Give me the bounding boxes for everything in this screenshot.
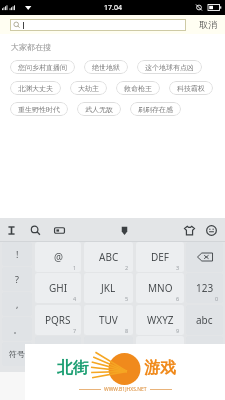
- staticText: JKL: [101, 281, 116, 295]
- button[interactable]: Handwriting: [117, 223, 132, 238]
- staticText: 123: [196, 281, 214, 295]
- button[interactable]: 123: [186, 273, 223, 303]
- staticText: PQRS: [45, 313, 71, 327]
- staticText: 17.04: [104, 3, 122, 13]
- button[interactable]: globe: [35, 336, 81, 366]
- staticText: 。: [13, 324, 22, 335]
- staticText: 7: [73, 327, 77, 334]
- button[interactable]: MNO: [136, 273, 184, 303]
- staticText: 符号: [9, 349, 25, 359]
- staticText: DEF: [151, 250, 170, 264]
- button[interactable]: 大劫主: [70, 81, 107, 95]
- staticText: abc: [196, 313, 213, 327]
- button[interactable]: JKL: [84, 273, 133, 303]
- button[interactable]: enter: [186, 336, 223, 366]
- button[interactable]: @: [35, 242, 81, 272]
- staticText: 9: [176, 327, 180, 334]
- button[interactable]: ,: [2, 292, 32, 316]
- staticText: WXYZ: [147, 313, 174, 327]
- staticText: 6: [176, 295, 180, 302]
- staticText: ABC: [99, 250, 119, 264]
- staticText: 5: [125, 295, 129, 302]
- button[interactable]: space: [84, 336, 133, 366]
- button[interactable]: 您问乡村直播间: [10, 60, 75, 74]
- staticText: 游戏: [144, 358, 176, 378]
- staticText: TUV: [99, 313, 118, 327]
- button[interactable]: 刷刷存在感: [130, 102, 181, 116]
- staticText: 刷刷存在感: [138, 105, 173, 114]
- button[interactable]: Search: [28, 223, 43, 238]
- button[interactable]: TUV: [84, 305, 133, 335]
- staticText: ?: [15, 273, 19, 285]
- button[interactable]: 救命枪王: [116, 81, 160, 95]
- staticText: 3: [176, 264, 180, 271]
- staticText: 武人无敌: [85, 105, 113, 114]
- staticText: 4: [73, 295, 77, 302]
- button[interactable]: ，: [136, 336, 184, 366]
- staticText: 取消: [199, 19, 217, 30]
- staticText: 这个地球有点凶: [145, 63, 194, 72]
- button[interactable]: 北渊大丈夫: [10, 81, 61, 95]
- button[interactable]: Clipboard: [52, 223, 67, 238]
- button[interactable]: abc: [186, 305, 223, 335]
- button[interactable]: 。: [2, 317, 32, 341]
- staticText: 1: [73, 264, 77, 271]
- button[interactable]: Emoji: [204, 223, 219, 238]
- staticText: GHI: [49, 281, 68, 295]
- staticText: 重生野性时代: [18, 105, 60, 114]
- button[interactable]: Input settings: [4, 223, 19, 238]
- button[interactable]: Theme: [182, 223, 197, 238]
- button[interactable]: GHI: [35, 273, 81, 303]
- button[interactable]: WXYZ: [136, 305, 184, 335]
- button[interactable]: 符号: [2, 342, 32, 366]
- staticText: 北渊大丈夫: [18, 84, 53, 93]
- staticText: ,: [16, 298, 19, 310]
- staticText: 大家都在搜: [11, 42, 51, 52]
- staticText: !: [16, 248, 19, 260]
- button[interactable]: 取消: [197, 15, 219, 34]
- button[interactable]: ?: [2, 267, 32, 291]
- button[interactable]: 这个地球有点凶: [137, 60, 202, 74]
- staticText: 科技霸权: [177, 84, 205, 93]
- button[interactable]: !: [2, 242, 32, 266]
- staticText: 救命枪王: [124, 84, 152, 93]
- staticText: 大劫主: [78, 84, 99, 93]
- staticText: 2: [125, 264, 129, 271]
- button[interactable]: [10, 19, 186, 31]
- staticText: WWW.B1JHXS.NET: [104, 386, 147, 393]
- button[interactable]: 重生野性时代: [10, 102, 68, 116]
- staticText: 您问乡村直播间: [18, 63, 67, 72]
- button[interactable]: ABC: [84, 242, 133, 272]
- button[interactable]: PQRS: [35, 305, 81, 335]
- button[interactable]: 科技霸权: [169, 81, 213, 95]
- button[interactable]: 武人无敌: [77, 102, 121, 116]
- staticText: @: [54, 250, 63, 264]
- staticText: MNO: [148, 281, 173, 295]
- staticText: 8: [125, 327, 129, 334]
- staticText: 0: [215, 295, 219, 302]
- staticText: 绝世地狱: [92, 63, 120, 72]
- button[interactable]: 绝世地狱: [84, 60, 128, 74]
- staticText: 北街: [57, 358, 89, 378]
- button[interactable]: del: [186, 242, 223, 272]
- button[interactable]: DEF: [136, 242, 184, 272]
